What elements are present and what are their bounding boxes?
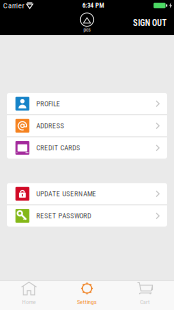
- button[interactable]: SIGN OUT: [125, 11, 174, 35]
- button[interactable]: CREDIT CARDS: [7, 137, 167, 159]
- staticText: ADDRESS: [36, 122, 64, 130]
- staticText: Cart: [140, 298, 150, 305]
- button[interactable]: RESET PASSWORD: [7, 205, 167, 227]
- staticText: 6:34 PM: [82, 2, 104, 9]
- button[interactable]: Settings: [58, 281, 116, 310]
- button[interactable]: ADDRESS: [7, 115, 167, 136]
- staticText: CREDIT CARDS: [36, 144, 80, 152]
- staticText: RESET PASSWORD: [36, 212, 91, 220]
- staticText: Carrier: [3, 1, 24, 10]
- staticText: Settings: [77, 298, 97, 305]
- button[interactable]: PROFILE: [7, 93, 167, 114]
- button[interactable]: Home: [0, 281, 58, 310]
- staticText: UPDATE USERNAME: [36, 190, 96, 198]
- staticText: PROFILE: [36, 99, 60, 108]
- staticText: Home: [22, 298, 36, 305]
- button[interactable]: Cart: [116, 281, 174, 310]
- staticText: SIGN OUT: [133, 18, 167, 28]
- staticText: pics: [83, 27, 90, 32]
- button[interactable]: UPDATE USERNAME: [7, 183, 167, 204]
